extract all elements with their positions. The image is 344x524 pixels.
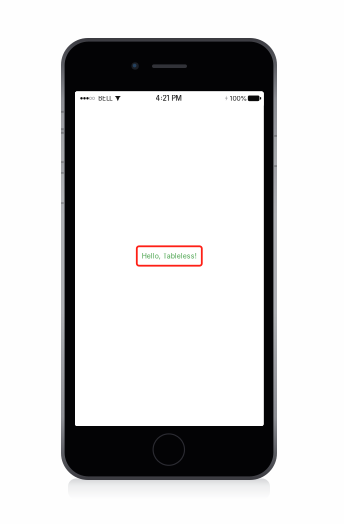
staticText: 4:21 PM — [155, 94, 181, 102]
button[interactable]: Hello, Tableless! — [137, 246, 202, 266]
staticText: 100% — [229, 94, 247, 102]
staticText: Hello, Tableless! — [142, 252, 197, 260]
staticText: BELL — [98, 95, 112, 102]
